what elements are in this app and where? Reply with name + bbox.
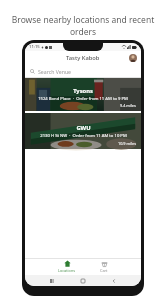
button[interactable]: Recents [48, 277, 56, 285]
staticText: 1524 Bond Place · Order from 11 AM to 9 … [38, 96, 128, 102]
staticText: GWU [76, 124, 91, 132]
button[interactable]: Locations [58, 260, 76, 273]
button[interactable]: Profile [129, 54, 137, 62]
staticText: 9.4 miles [120, 103, 136, 108]
button[interactable]: Cart [100, 260, 108, 273]
staticText: Search Venue [38, 68, 72, 75]
staticText: 2130 H St NW · Order from 11 AM to 10 PM [40, 133, 127, 139]
button[interactable]: Tysons [25, 78, 141, 111]
button[interactable]: Back [110, 277, 118, 285]
staticText: Tysons [73, 87, 93, 95]
button[interactable]: GWU [25, 113, 141, 149]
button[interactable]: Search Venue [25, 65, 141, 78]
staticText: Tasty Kabob [66, 54, 100, 62]
staticText: Locations [58, 268, 76, 273]
button[interactable]: Home [79, 277, 87, 285]
staticText: Browse nearby locations and recent order… [0, 14, 166, 38]
staticText: 10.9 miles [118, 141, 136, 146]
staticText: Cart [100, 268, 108, 273]
staticText: 11:15 [29, 44, 40, 50]
